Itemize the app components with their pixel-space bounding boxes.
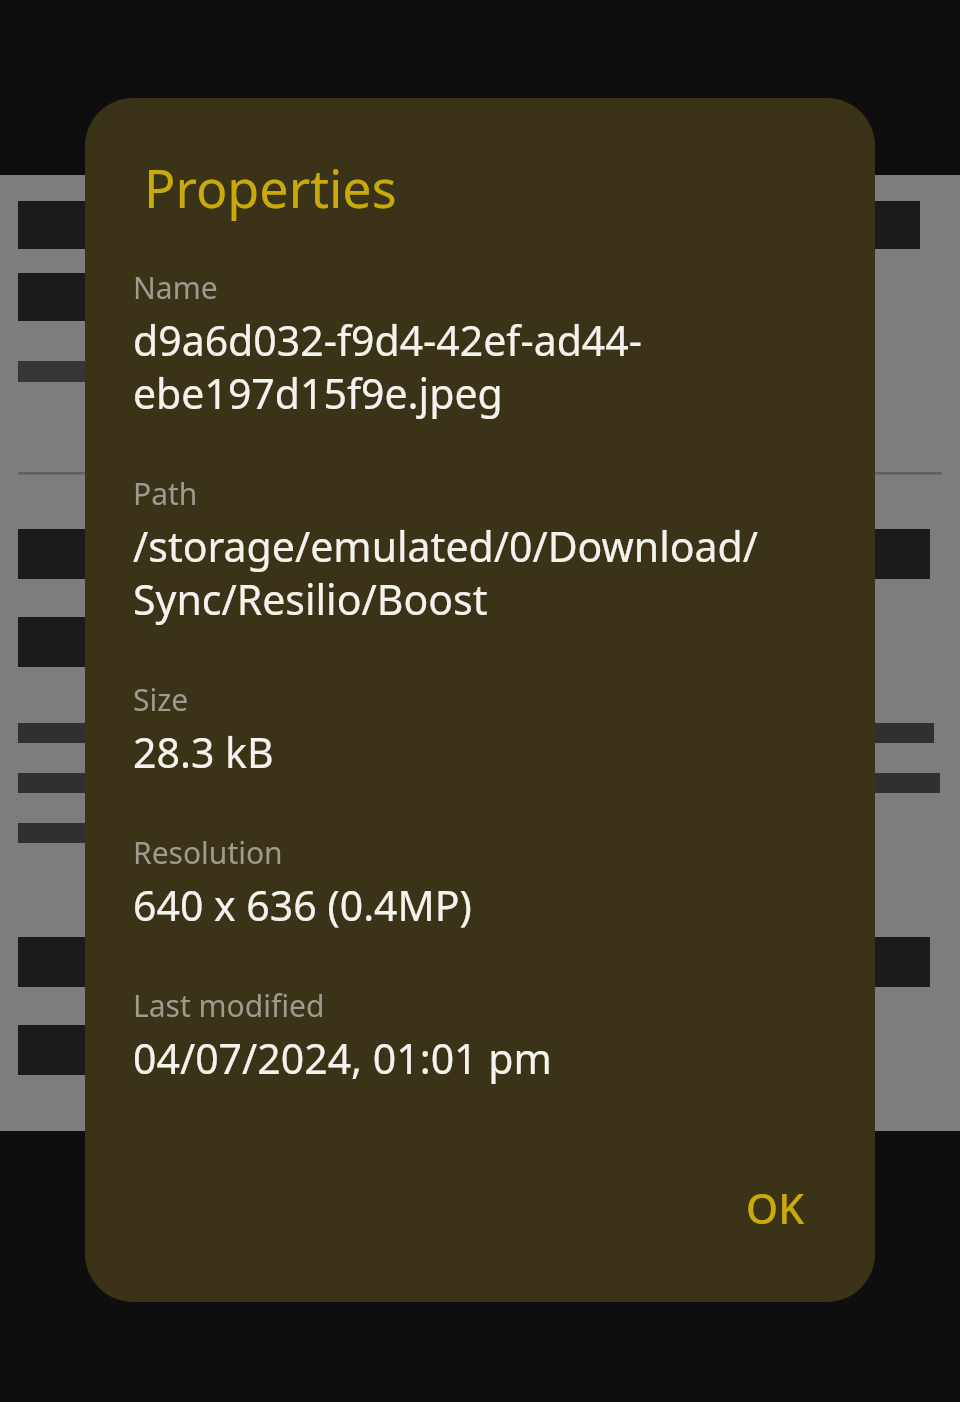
staticText: 640 x 636 (0.4MP) bbox=[133, 877, 472, 933]
button[interactable]: OK bbox=[722, 1166, 829, 1250]
staticText: Path bbox=[133, 473, 198, 514]
staticText: Name bbox=[133, 267, 218, 308]
staticText: Last modified bbox=[133, 985, 325, 1026]
staticText: OK bbox=[746, 1180, 805, 1236]
staticText: Size bbox=[133, 679, 189, 720]
staticText: 04/07/2024, 01:01 pm bbox=[133, 1030, 552, 1086]
staticText: Properties bbox=[144, 152, 397, 223]
staticText: Resolution bbox=[133, 832, 283, 873]
staticText: /storage/emulated/0/Download/Sync/Resili… bbox=[133, 518, 839, 627]
staticText: 28.3 kB bbox=[133, 724, 274, 780]
staticText: d9a6d032-f9d4-42ef-ad44-ebe197d15f9e.jpe… bbox=[133, 312, 839, 421]
